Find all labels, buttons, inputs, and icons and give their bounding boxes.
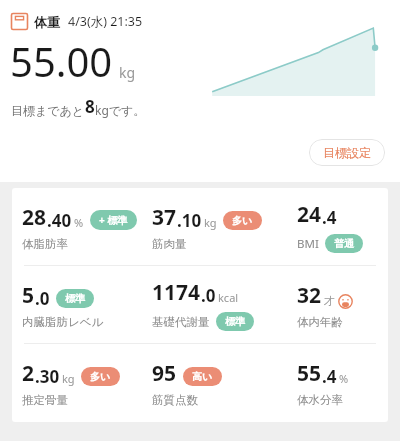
staticText: 体脂肪率 bbox=[22, 237, 68, 251]
staticText: % bbox=[74, 215, 84, 230]
staticText: 推定骨量 bbox=[22, 393, 68, 407]
staticText: 筋質点数 bbox=[152, 393, 198, 407]
button[interactable]: 1174 bbox=[152, 278, 297, 331]
staticText: kgです。 bbox=[95, 102, 146, 118]
staticText: 高い bbox=[192, 370, 213, 383]
staticText: 2 bbox=[22, 359, 35, 388]
staticText: 体内年齢 bbox=[297, 315, 343, 329]
staticText: .4 bbox=[322, 365, 337, 388]
staticText: 体重 bbox=[34, 14, 60, 30]
staticText: % bbox=[339, 371, 349, 386]
staticText: BMI bbox=[297, 236, 319, 252]
staticText: .4 bbox=[322, 206, 337, 229]
staticText: .30 bbox=[35, 365, 60, 388]
button[interactable]: 95 bbox=[152, 359, 297, 407]
staticText: 24 bbox=[297, 200, 322, 229]
button[interactable]: 5 bbox=[22, 281, 152, 329]
staticText: 普通 bbox=[334, 237, 354, 250]
staticText: kg bbox=[204, 215, 217, 230]
button[interactable]: 目標設定 bbox=[309, 139, 385, 166]
staticText: .40 bbox=[47, 209, 72, 232]
staticText: 95 bbox=[152, 359, 177, 388]
staticText: 多い bbox=[232, 214, 253, 227]
staticText: 目標まであと bbox=[11, 103, 85, 118]
staticText: 1174 bbox=[152, 278, 201, 307]
other: 体重計 bbox=[11, 13, 28, 30]
other: 体内年齢の評価 bbox=[338, 294, 353, 309]
staticText: 55.00 bbox=[10, 34, 113, 88]
staticText: kcal bbox=[218, 290, 239, 305]
staticText: 目標設定 bbox=[323, 145, 371, 160]
button[interactable]: 2 bbox=[22, 359, 152, 407]
staticText: 標準 bbox=[225, 315, 245, 328]
staticText: 4/3(水) 21:35 bbox=[68, 13, 143, 30]
staticText: 才 bbox=[324, 294, 335, 308]
staticText: 8 bbox=[85, 95, 95, 118]
staticText: 標準 bbox=[65, 292, 85, 305]
staticText: 55 bbox=[297, 359, 322, 388]
button[interactable]: 37 bbox=[152, 203, 297, 251]
button[interactable]: 32 bbox=[297, 281, 388, 329]
button[interactable]: 28 bbox=[22, 203, 152, 251]
button[interactable]: 55 bbox=[297, 359, 388, 407]
staticText: 28 bbox=[22, 203, 47, 232]
staticText: 基礎代謝量 bbox=[152, 315, 210, 329]
staticText: 内臓脂肪レベル bbox=[22, 315, 104, 329]
staticText: 体水分率 bbox=[297, 393, 343, 407]
staticText: 5 bbox=[22, 281, 35, 310]
staticText: .0 bbox=[201, 284, 216, 307]
staticText: 多い bbox=[90, 370, 111, 383]
staticText: .10 bbox=[177, 209, 202, 232]
staticText: kg bbox=[62, 371, 75, 386]
staticText: + 標準 bbox=[99, 213, 128, 227]
button[interactable]: 24 bbox=[297, 200, 388, 253]
staticText: 37 bbox=[152, 203, 177, 232]
staticText: 筋肉量 bbox=[152, 237, 187, 251]
staticText: kg bbox=[119, 63, 136, 82]
staticText: .0 bbox=[35, 287, 50, 310]
staticText: 32 bbox=[297, 281, 322, 310]
